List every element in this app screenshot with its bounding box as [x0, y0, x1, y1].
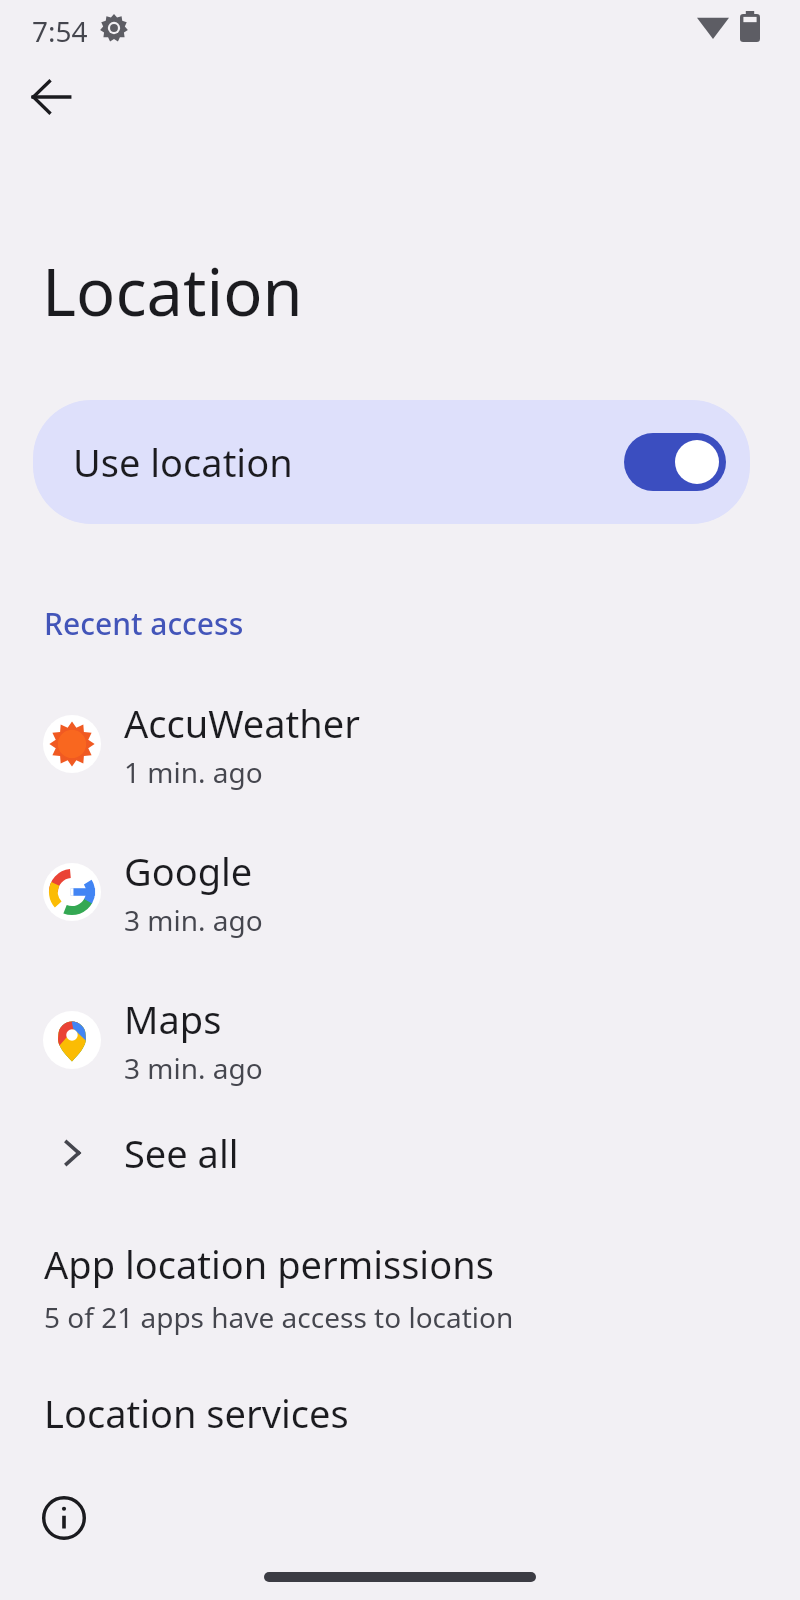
staticText: See all: [124, 1127, 239, 1179]
staticText: Google: [124, 845, 253, 897]
button[interactable]: Location services: [0, 1380, 800, 1446]
button[interactable]: App location permissions: [0, 1232, 800, 1346]
staticText: App location permissions: [44, 1238, 494, 1290]
staticText: 5 of 21 apps have access to location: [44, 1298, 514, 1336]
staticText: 3 min. ago: [124, 1049, 263, 1087]
staticText: Location: [42, 247, 303, 336]
staticText: Use location: [73, 436, 624, 488]
button[interactable]: Back: [16, 62, 86, 132]
staticText: Maps: [124, 993, 222, 1045]
staticText: 3 min. ago: [124, 901, 263, 939]
button[interactable]: About location: [30, 1484, 98, 1552]
staticText: AccuWeather: [124, 697, 360, 749]
button[interactable]: See all: [20, 1110, 780, 1196]
button[interactable]: Use location: [33, 400, 750, 524]
button[interactable]: AccuWeather: [20, 678, 780, 810]
staticText: 1 min. ago: [124, 753, 263, 791]
button[interactable]: Use location: [624, 433, 726, 491]
staticText: 7:54: [32, 12, 88, 50]
staticText: Location services: [44, 1387, 349, 1439]
button[interactable]: Google: [20, 826, 780, 958]
button[interactable]: Maps: [20, 974, 780, 1106]
staticText: Recent access: [44, 603, 244, 644]
